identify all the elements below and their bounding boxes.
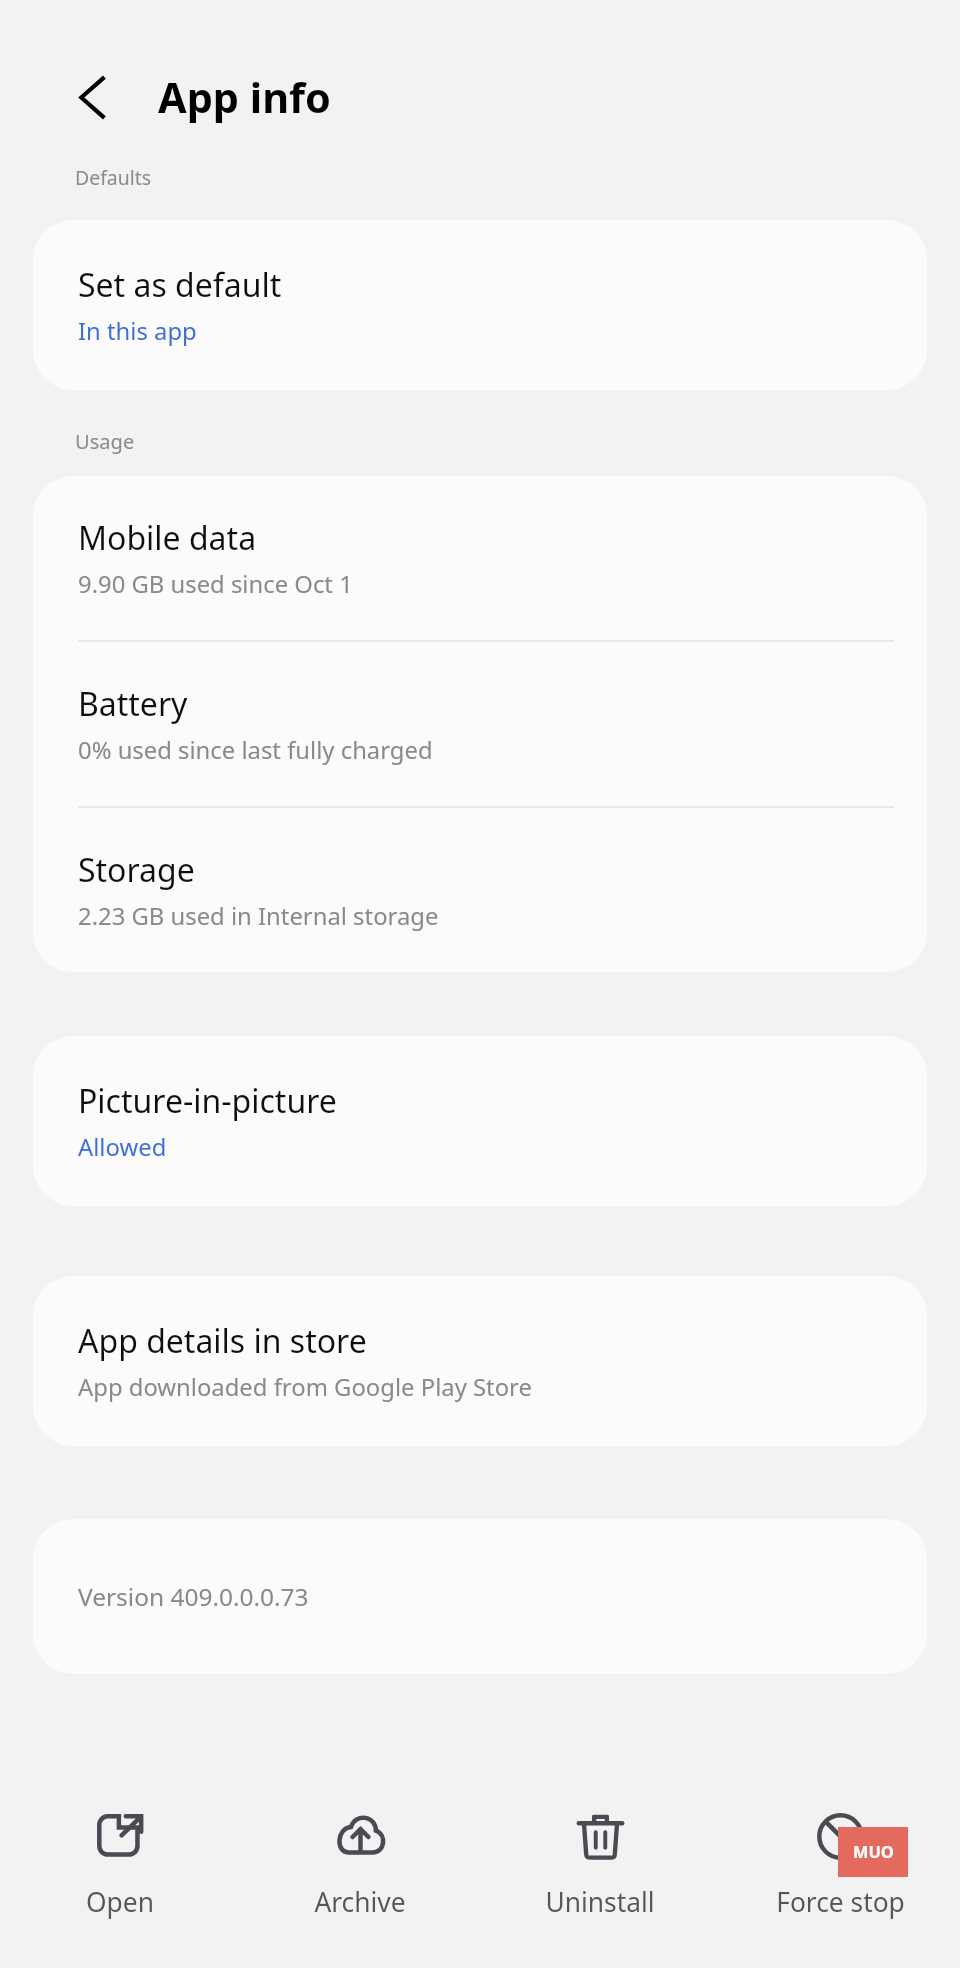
staticText: Allowed xyxy=(78,1131,167,1163)
staticText: Defaults xyxy=(75,164,152,190)
button[interactable]: Storage xyxy=(33,808,927,972)
button[interactable]: Force stop xyxy=(720,1777,960,1935)
button[interactable]: Version 409.0.0.0.73 xyxy=(33,1519,927,1674)
button[interactable]: Archive xyxy=(240,1777,480,1935)
button[interactable]: App details in store xyxy=(33,1276,927,1446)
staticText: Set as default xyxy=(78,263,282,307)
staticText: 2.23 GB used in Internal storage xyxy=(78,900,439,932)
staticText: Battery xyxy=(78,682,188,726)
button[interactable]: Open xyxy=(0,1777,240,1935)
button[interactable]: Mobile data xyxy=(33,476,927,640)
staticText: App info xyxy=(158,69,331,125)
staticText: Archive xyxy=(314,1884,406,1920)
staticText: In this app xyxy=(78,315,197,347)
staticText: Picture-in-picture xyxy=(78,1079,337,1123)
staticText: MUO xyxy=(853,1841,894,1863)
staticText: Uninstall xyxy=(545,1884,655,1920)
button[interactable]: Uninstall xyxy=(480,1777,720,1935)
button[interactable]: Back xyxy=(55,58,133,136)
button[interactable]: Picture-in-picture xyxy=(33,1036,927,1206)
button[interactable]: Set as default xyxy=(33,220,927,390)
staticText: 0% used since last fully charged xyxy=(78,734,433,766)
staticText: Mobile data xyxy=(78,516,257,560)
staticText: Force stop xyxy=(776,1884,905,1920)
staticText: Version 409.0.0.0.73 xyxy=(78,1580,309,1613)
staticText: Open xyxy=(86,1884,154,1920)
button[interactable]: Battery xyxy=(33,642,927,806)
staticText: App downloaded from Google Play Store xyxy=(78,1371,532,1403)
staticText: Usage xyxy=(75,428,135,455)
staticText: Storage xyxy=(78,848,195,892)
staticText: App details in store xyxy=(78,1319,367,1363)
staticText: 9.90 GB used since Oct 1 xyxy=(78,568,353,600)
